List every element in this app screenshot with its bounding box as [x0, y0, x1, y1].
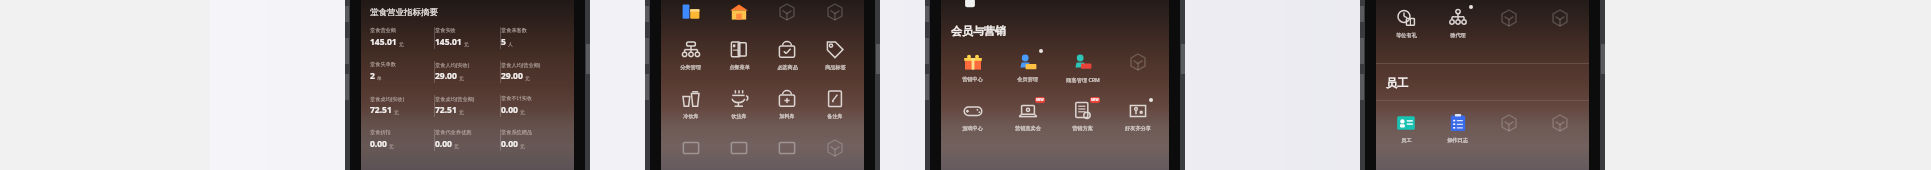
button[interactable]: NEW	[1000, 99, 1055, 134]
staticText: 145.01	[370, 36, 397, 48]
staticText: 元	[525, 75, 530, 81]
button[interactable]: 会员管理	[1000, 50, 1055, 85]
button[interactable]: 必选商品	[763, 38, 811, 73]
staticText: 元	[399, 41, 404, 47]
staticText: 备注库	[827, 113, 843, 120]
staticText: 5	[501, 36, 506, 48]
staticText: 必选商品	[777, 64, 798, 71]
staticText: 堂食桌均(实收)	[370, 95, 405, 102]
button[interactable]: App shortcut	[1483, 6, 1534, 30]
staticText: 元	[454, 143, 459, 149]
button[interactable]: 等位有礼	[1380, 6, 1432, 41]
staticText: 堂食营业额	[370, 27, 396, 34]
staticText: NEW	[1091, 98, 1099, 102]
staticText: 等位有礼	[1396, 32, 1417, 39]
staticText: 元	[459, 109, 464, 115]
button[interactable]: App shortcut	[1110, 50, 1165, 74]
button[interactable]: 店铺首页	[715, 0, 763, 26]
staticText: 分类管理	[680, 64, 701, 71]
button[interactable]: App shortcut	[763, 136, 811, 160]
staticText: 0.00	[370, 138, 387, 150]
staticText: 好友齐分享	[1125, 125, 1151, 132]
staticText: 人	[508, 41, 513, 47]
staticText: 元	[520, 109, 525, 115]
staticText: 堂食营业指标摘要	[370, 7, 438, 18]
button[interactable]: 饮法库	[715, 87, 763, 122]
button[interactable]: App shortcut	[811, 136, 859, 160]
staticText: 29.00	[501, 70, 523, 82]
staticText: 操作日志	[1447, 137, 1468, 144]
button[interactable]: 加料库	[763, 87, 811, 122]
staticText: 营销中心	[962, 76, 983, 83]
staticText: 72.51	[370, 104, 392, 116]
button[interactable]: App shortcut	[666, 136, 715, 160]
button[interactable]: 员工	[1380, 111, 1432, 146]
staticText: 点餐菜单	[729, 64, 750, 71]
staticText: 营销方案	[1072, 125, 1093, 132]
staticText: 堂食人均(营业额)	[501, 61, 541, 68]
button[interactable]: App shortcut	[1483, 111, 1534, 135]
button[interactable]: App shortcut	[763, 0, 811, 24]
staticText: 堂食失单数	[370, 61, 396, 68]
staticText: 29.00	[435, 70, 457, 82]
staticText: 微代理	[1450, 32, 1466, 39]
button[interactable]: 备注库	[811, 87, 859, 122]
button[interactable]: 冷饮库	[666, 87, 715, 122]
button[interactable]: 操作日志	[1432, 111, 1483, 146]
staticText: 元	[389, 143, 394, 149]
staticText: 元	[464, 41, 469, 47]
staticText: 堂食实收	[435, 27, 456, 34]
button[interactable]: App shortcut	[1534, 111, 1585, 135]
staticText: 会员与营销	[951, 24, 1006, 38]
staticText: 元	[459, 75, 464, 81]
staticText: 堂食人均(实收)	[435, 61, 470, 68]
button[interactable]: 好友齐分享	[1110, 99, 1165, 134]
staticText: 员工	[1386, 76, 1408, 90]
staticText: 堂食代金券优惠	[435, 129, 472, 136]
staticText: 冷饮库	[683, 113, 699, 120]
staticText: 0.00	[501, 138, 518, 150]
button[interactable]: 微代理	[1432, 6, 1483, 41]
staticText: 单	[377, 75, 382, 81]
staticText: 堂食系统赠品	[501, 129, 533, 136]
staticText: 营销直卖会	[1015, 125, 1041, 132]
button[interactable]: 营销中心	[945, 50, 1000, 85]
staticText: 会员管理	[1017, 76, 1038, 83]
button[interactable]: App shortcut	[1534, 6, 1585, 30]
staticText: 0.00	[501, 104, 518, 116]
button[interactable]: 游戏中心	[945, 99, 1000, 134]
staticText: 商品标签	[825, 64, 846, 71]
staticText: 2	[370, 70, 375, 82]
staticText: 堂食来客数	[501, 27, 527, 34]
button[interactable]: 顾客管理 CRM	[1055, 50, 1110, 85]
button[interactable]: 分类管理	[666, 38, 715, 73]
staticText: 堂食不计实收	[501, 95, 533, 102]
staticText: 加料库	[779, 113, 795, 120]
button[interactable]: NEW	[1055, 99, 1110, 134]
staticText: 顾客管理 CRM	[1066, 76, 1100, 83]
button[interactable]: 商品与套餐	[666, 0, 715, 26]
button[interactable]: 商品标签	[811, 38, 859, 73]
staticText: 堂食桌均(营业额)	[435, 95, 475, 102]
button[interactable]: App shortcut	[715, 136, 763, 160]
button[interactable]: App shortcut	[811, 0, 859, 24]
staticText: 饮法库	[731, 113, 747, 120]
button[interactable]: 点餐菜单	[715, 38, 763, 73]
staticText: 0.00	[435, 138, 452, 150]
staticText: NEW	[1036, 98, 1044, 102]
staticText: 72.51	[435, 104, 457, 116]
staticText: 元	[520, 143, 525, 149]
staticText: 145.01	[435, 36, 462, 48]
staticText: 堂食折扣	[370, 129, 391, 136]
staticText: 游戏中心	[962, 125, 983, 132]
staticText: 元	[394, 109, 399, 115]
staticText: 员工	[1401, 137, 1412, 144]
